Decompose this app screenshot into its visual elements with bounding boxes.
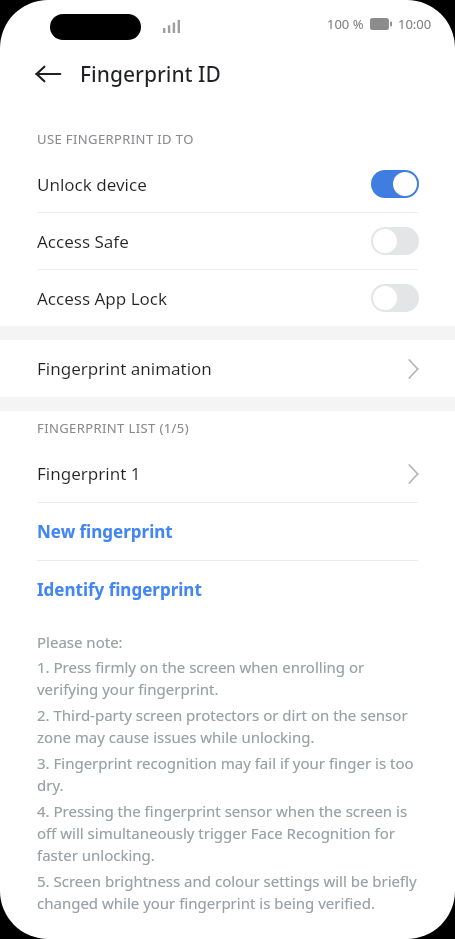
staticText: Please note: (37, 632, 123, 652)
staticText: New fingerprint (37, 520, 173, 543)
button[interactable]: Access App Lock (0, 270, 455, 326)
staticText: FINGERPRINT LIST (1/5) (37, 419, 189, 437)
staticText: Fingerprint animation (37, 357, 408, 380)
staticText: Identify fingerprint (37, 578, 202, 601)
staticText: Access Safe (37, 230, 371, 253)
staticText: 10:00 (398, 15, 432, 33)
button[interactable]: Fingerprint 1 (0, 445, 455, 502)
staticText: USE FINGERPRINT ID TO (37, 130, 194, 148)
staticText: 5. Screen brightness and colour settings… (37, 871, 429, 914)
button[interactable]: New fingerprint (0, 503, 455, 560)
staticText: Unlock device (37, 173, 371, 196)
staticText: Fingerprint ID (80, 60, 221, 89)
button[interactable]: Identify fingerprint (0, 561, 455, 618)
button[interactable]: Access Safe (0, 213, 455, 269)
button[interactable]: Fingerprint animation (0, 340, 455, 397)
staticText: Access App Lock (37, 287, 371, 310)
staticText: 4. Pressing the fingerprint sensor when … (37, 801, 429, 866)
staticText: 1. Press firmly on the screen when enrol… (37, 657, 429, 700)
button[interactable]: Back (26, 52, 70, 96)
staticText: 3. Fingerprint recognition may fail if y… (37, 753, 429, 796)
button[interactable]: Unlock device (0, 156, 455, 212)
staticText: 2. Third-party screen protectors or dirt… (37, 705, 429, 748)
staticText: 100 % (327, 15, 364, 33)
staticText: Fingerprint 1 (37, 462, 408, 485)
